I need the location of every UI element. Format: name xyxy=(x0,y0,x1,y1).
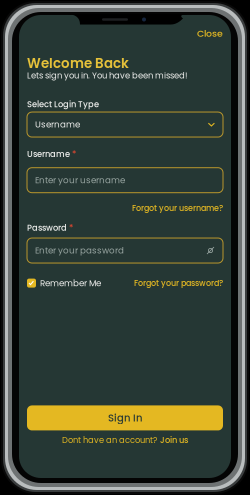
staticText: Close xyxy=(197,27,223,40)
button[interactable]: Close xyxy=(191,15,231,44)
button[interactable]: Join us xyxy=(160,434,188,446)
staticText: Forgot your username? xyxy=(132,203,223,214)
staticText: Enter your username xyxy=(35,174,125,186)
button[interactable]: Forgot your password? xyxy=(134,274,223,292)
staticText: * xyxy=(69,222,73,234)
staticText: Enter your password xyxy=(35,244,124,257)
staticText: Sign In xyxy=(108,411,142,425)
staticText: Forgot your password? xyxy=(134,277,223,289)
staticText: Lets sign you in. You have been missed! xyxy=(27,70,188,81)
staticText: * xyxy=(72,148,76,160)
button[interactable]: Sign In xyxy=(27,405,223,430)
staticText: Username xyxy=(35,118,80,131)
staticText: Select Login Type xyxy=(27,98,99,110)
button[interactable]: Forgot your username? xyxy=(126,198,223,217)
staticText: Password xyxy=(27,222,67,234)
staticText: Join us xyxy=(160,434,188,446)
staticText: Username xyxy=(27,148,70,160)
button[interactable]: Remember Me xyxy=(27,274,101,292)
staticText: Dont have an account? xyxy=(62,434,157,446)
staticText: Welcome Back xyxy=(27,54,129,73)
staticText: Remember Me xyxy=(40,277,101,289)
